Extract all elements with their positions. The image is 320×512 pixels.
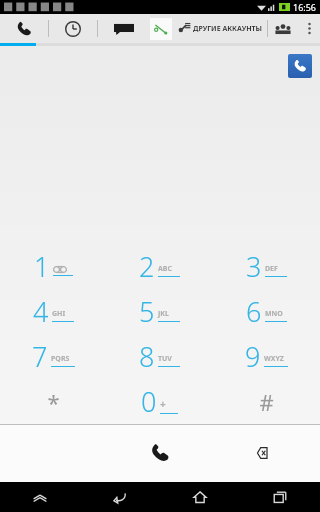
button[interactable]: Menu — [0, 482, 80, 512]
staticText: PQRS — [51, 354, 70, 364]
button[interactable]: 6 — [213, 289, 320, 334]
button[interactable]: 3 — [213, 244, 320, 289]
button[interactable]: Dial — [132, 425, 188, 481]
button[interactable]: Dialer tab — [0, 14, 48, 43]
button[interactable]: Groups — [268, 14, 298, 43]
button[interactable]: Back — [80, 482, 160, 512]
button[interactable]: 8 — [106, 334, 213, 379]
staticText: ДРУГИЕ АККАУНТЫ — [193, 24, 263, 34]
staticText: JKL — [158, 309, 169, 319]
button[interactable]: 5 — [106, 289, 213, 334]
button[interactable]: 9 — [213, 334, 320, 379]
button[interactable]: Home — [160, 482, 240, 512]
staticText: * — [47, 387, 60, 417]
button[interactable]: Recents tab — [49, 14, 97, 43]
button[interactable]: Backspace — [240, 433, 280, 473]
staticText: 8 — [139, 338, 155, 375]
button[interactable]: Recents — [240, 482, 320, 512]
staticText: 7 — [32, 338, 48, 375]
staticText: WXYZ — [264, 354, 284, 364]
staticText: GHI — [52, 309, 66, 319]
staticText: 4 — [33, 293, 49, 330]
staticText: 5 — [139, 293, 155, 330]
button[interactable]: 0 — [106, 379, 213, 424]
staticText: + — [160, 397, 166, 411]
button[interactable]: 7 — [0, 334, 106, 379]
button[interactable]: # — [213, 379, 320, 424]
staticText: MNO — [265, 309, 283, 319]
button[interactable]: * — [0, 379, 106, 424]
button[interactable]: 1 — [0, 244, 106, 289]
button[interactable]: 4 — [0, 289, 106, 334]
button[interactable]: Contacts tab — [98, 14, 150, 43]
button[interactable]: More options — [298, 14, 320, 43]
staticText: 9 — [245, 338, 261, 375]
staticText: 0 — [141, 383, 157, 420]
staticText: 16:56 — [293, 1, 317, 13]
staticText: 6 — [246, 293, 262, 330]
staticText: 1 — [34, 248, 50, 285]
staticText: DEF — [265, 264, 278, 274]
staticText: # — [259, 387, 274, 417]
button[interactable]: 2 — [106, 244, 213, 289]
button[interactable]: Account — [150, 18, 172, 40]
staticText: 2 — [139, 248, 155, 285]
staticText: 3 — [246, 248, 262, 285]
button[interactable]: Call — [288, 54, 312, 78]
staticText: ABC — [158, 264, 172, 274]
staticText: TUV — [158, 354, 172, 364]
button[interactable]: ДРУГИЕ АККАУНТЫ — [178, 14, 263, 43]
